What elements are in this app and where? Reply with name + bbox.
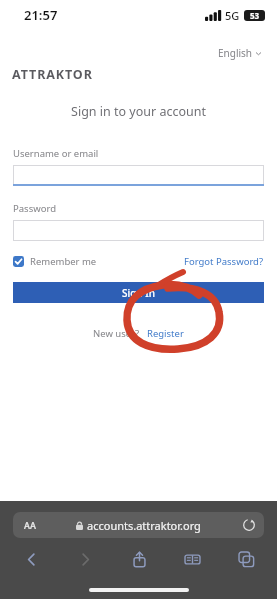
staticText: Sign In [122,286,156,300]
button[interactable]: Tabs [231,546,261,572]
button[interactable]: AA [13,512,264,538]
button[interactable]: Forgot Password? [184,255,264,268]
staticText: English [218,46,253,60]
button[interactable]: Remember me [13,255,97,268]
staticText: Register [147,327,184,340]
staticText: 5G [225,8,240,23]
staticText: AA [24,519,36,531]
button[interactable]: Reload [242,518,256,532]
staticText: ATTRAKTOR [12,66,93,83]
staticText: Password [13,202,56,215]
staticText: Username or email [13,147,99,160]
staticText: Remember me [30,255,97,268]
staticText: Forgot Password? [184,255,264,268]
button[interactable] [13,165,264,186]
button[interactable]: Register [147,327,184,340]
staticText: accounts.attraktor.org [87,518,201,533]
button[interactable]: Sign In [13,282,264,303]
staticText: Sign in to your account [0,103,277,120]
button[interactable]: Bookmarks [177,546,207,572]
button[interactable] [13,220,264,241]
staticText: 53 [250,10,260,21]
button[interactable]: Share [124,546,154,572]
button[interactable]: Back [16,546,46,572]
button[interactable]: English [216,44,263,62]
staticText: 21:57 [24,6,58,24]
staticText: New user? [93,327,140,340]
button[interactable]: Forward [70,546,100,572]
